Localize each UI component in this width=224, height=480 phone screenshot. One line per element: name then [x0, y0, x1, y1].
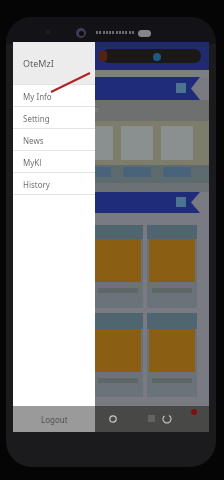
staticText: Popular Brands On Sale — [21, 105, 99, 115]
button[interactable] — [147, 313, 197, 397]
staticText: MyKl — [23, 157, 42, 168]
button[interactable] — [147, 225, 197, 308]
button[interactable]: MyKl — [13, 151, 95, 173]
button[interactable]: News — [13, 129, 95, 151]
button[interactable] — [93, 225, 143, 308]
staticText: News — [23, 135, 44, 146]
staticText: History — [23, 179, 50, 190]
button[interactable]: Logout — [13, 406, 95, 432]
staticText: Logout — [41, 414, 68, 425]
button[interactable]: History — [13, 173, 95, 195]
button[interactable]: Back — [163, 415, 171, 423]
staticText: Setting — [23, 113, 50, 124]
staticText: Hot Market — [21, 84, 59, 94]
button[interactable]: Home — [109, 415, 117, 423]
button[interactable]: Setting — [13, 107, 95, 129]
button[interactable] — [93, 313, 143, 397]
staticText: My Info — [23, 91, 52, 102]
button[interactable]: My Info — [13, 85, 95, 107]
staticText: OteMzI — [23, 57, 54, 69]
